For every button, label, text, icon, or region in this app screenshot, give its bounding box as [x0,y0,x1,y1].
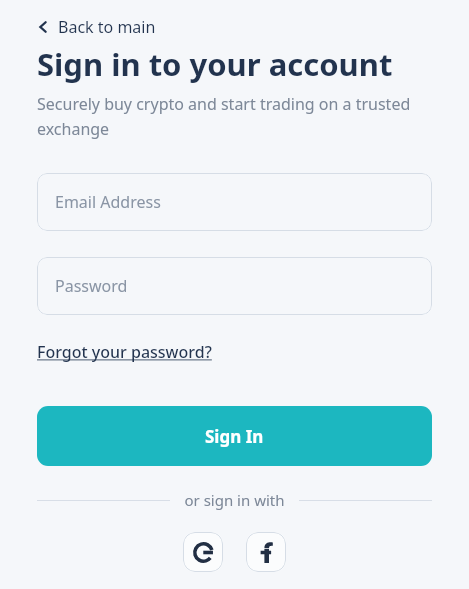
staticText: Securely buy crypto and start trading on… [37,93,432,139]
button[interactable]: Sign in with Google [183,532,223,572]
button[interactable]: Email Address [37,173,432,231]
staticText: Sign in to your account [37,43,393,85]
staticText: Password [55,275,128,297]
button[interactable]: Sign In [37,406,432,466]
staticText: or sign in with [184,490,285,510]
button[interactable]: Back to main [37,14,156,40]
staticText: Email Address [55,191,161,213]
button[interactable]: Sign in with Facebook [246,532,286,572]
staticText: Sign In [205,425,264,448]
button[interactable]: Forgot your password? [37,339,212,365]
button[interactable]: Password [37,257,432,315]
staticText: Back to main [58,16,156,38]
staticText: Forgot your password? [37,341,212,363]
